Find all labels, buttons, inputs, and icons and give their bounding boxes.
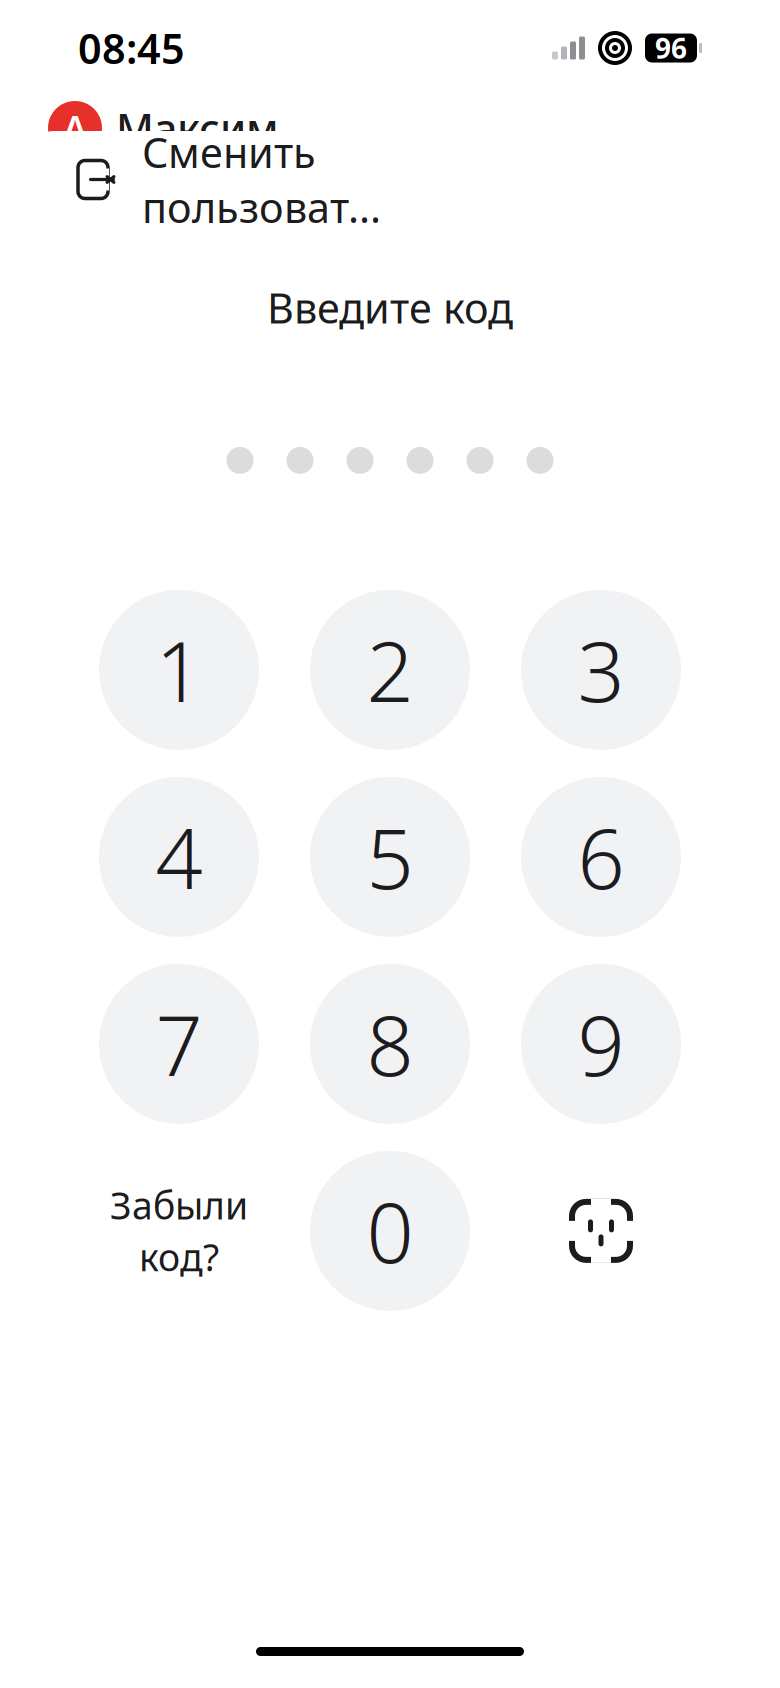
button[interactable]: 7 (99, 964, 259, 1124)
button[interactable]: 0 (310, 1151, 470, 1311)
button[interactable]: Face ID (521, 1151, 681, 1311)
staticText: 0 (366, 1176, 413, 1286)
button[interactable]: 9 (521, 964, 681, 1124)
staticText: 08:45 (78, 21, 185, 75)
staticText: 3 (577, 615, 624, 725)
staticText: 4 (155, 802, 202, 912)
staticText: 9 (577, 989, 624, 1099)
staticText: 6 (577, 802, 624, 912)
staticText: Максим (116, 101, 279, 155)
button[interactable]: 3 (521, 590, 681, 750)
staticText: 5 (366, 802, 413, 912)
staticText: 2 (366, 615, 413, 725)
button[interactable]: 5 (310, 777, 470, 937)
staticText: 1 (155, 615, 202, 725)
button[interactable]: 4 (99, 777, 259, 937)
button[interactable]: 1 (99, 590, 259, 750)
button[interactable]: Забыли (99, 1151, 259, 1311)
button[interactable]: 2 (310, 590, 470, 750)
button[interactable]: Сменить пользоват... (32, 131, 493, 228)
staticText: код? (139, 1232, 219, 1281)
staticText: А (63, 104, 87, 152)
staticText: Введите код (267, 280, 513, 335)
button[interactable]: 6 (521, 777, 681, 937)
staticText: Забыли (110, 1180, 248, 1230)
staticText: Сменить пользоват... (142, 125, 381, 234)
staticText: 7 (155, 989, 202, 1099)
staticText: 8 (366, 989, 413, 1099)
staticText: ⌄ (293, 108, 322, 148)
staticText: 96 (655, 29, 687, 67)
button[interactable]: 8 (310, 964, 470, 1124)
